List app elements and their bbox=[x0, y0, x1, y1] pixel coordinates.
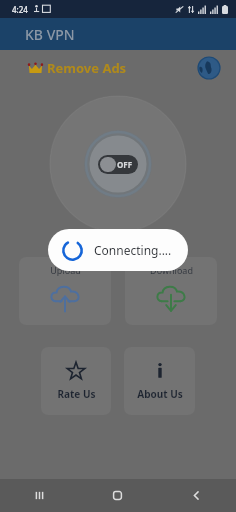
staticText: 4:24 bbox=[12, 4, 28, 15]
staticText: KB VPN bbox=[25, 25, 75, 44]
button[interactable]: Back bbox=[157, 479, 236, 512]
staticText: Download bbox=[150, 264, 193, 276]
button[interactable]: Home bbox=[78, 479, 157, 512]
button[interactable]: VPN power toggle, off bbox=[98, 155, 138, 174]
button[interactable]: Download bbox=[125, 257, 217, 325]
staticText: OFF bbox=[117, 159, 133, 170]
staticText: About Us bbox=[137, 387, 183, 401]
button[interactable]: Remove Ads bbox=[28, 59, 127, 77]
button[interactable]: Rate Us bbox=[41, 347, 111, 415]
staticText: Remove Ads bbox=[47, 59, 127, 77]
button[interactable]: Select server location bbox=[198, 57, 220, 79]
button[interactable]: About Us bbox=[124, 347, 195, 415]
staticText: Upload bbox=[50, 264, 81, 276]
button[interactable]: Recent apps bbox=[0, 479, 78, 512]
staticText: Connecting.... bbox=[94, 242, 172, 258]
button[interactable]: Upload bbox=[19, 257, 111, 325]
staticText: Rate Us bbox=[57, 387, 96, 401]
